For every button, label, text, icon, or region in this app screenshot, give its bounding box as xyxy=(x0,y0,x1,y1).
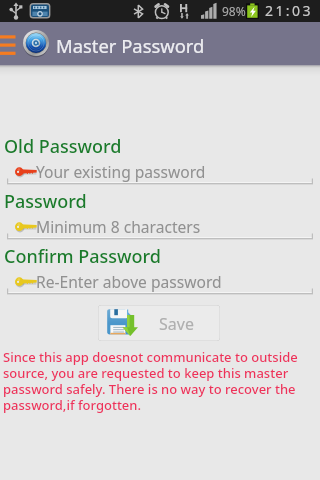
staticText: Save xyxy=(159,313,194,335)
staticText: Confirm Password xyxy=(4,244,162,269)
button[interactable]: Old Password xyxy=(0,136,320,184)
staticText: Since this app doesnot communicate to ou… xyxy=(3,348,305,413)
button[interactable]: Navigation menu xyxy=(0,22,20,65)
staticText: Minimum 8 characters xyxy=(36,216,201,237)
staticText: Your existing password xyxy=(36,161,206,182)
staticText: Old Password xyxy=(4,134,122,159)
staticText: 21:03 xyxy=(265,1,313,20)
button[interactable]: Password xyxy=(0,191,320,239)
staticText: Re-Enter above password xyxy=(36,271,222,292)
staticText: Master Password xyxy=(56,33,205,58)
button[interactable]: Confirm Password xyxy=(0,246,320,294)
button[interactable]: Save xyxy=(98,305,220,341)
staticText: 98% xyxy=(222,3,246,19)
staticText: Password xyxy=(4,189,87,214)
